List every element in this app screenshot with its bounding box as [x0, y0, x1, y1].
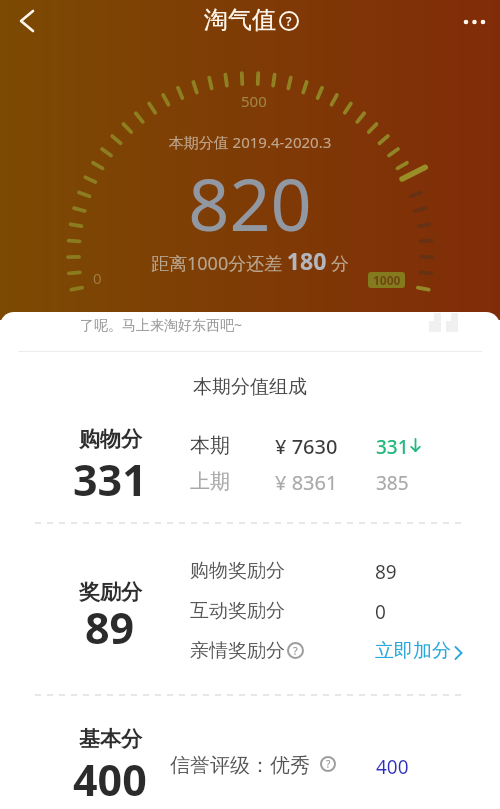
staticText: 距离1000分还差 180 分	[0, 245, 500, 276]
staticText: 了呢。马上来淘好东西吧~	[80, 315, 243, 334]
staticText: 331	[376, 434, 409, 460]
staticText: ¥ 8361	[275, 469, 338, 496]
staticText: 立即加分	[375, 639, 451, 663]
staticText: 本期分值 2019.4-2020.3	[0, 132, 500, 152]
button[interactable]: 了呢。马上来淘好东西吧~	[0, 312, 500, 351]
staticText: 淘气值	[204, 5, 276, 35]
staticText: 亲情奖励分	[190, 639, 285, 663]
button[interactable]: 立即加分	[375, 639, 466, 663]
button[interactable]: ?	[320, 756, 336, 772]
staticText: ?	[293, 644, 298, 658]
staticText: ¥ 7630	[275, 433, 338, 460]
button[interactable]: ?	[287, 642, 304, 659]
staticText: 400	[73, 750, 147, 809]
staticText: 500	[241, 91, 267, 111]
staticText: 0	[375, 599, 386, 625]
staticText: 820	[0, 154, 500, 252]
staticText: 上期	[190, 469, 230, 494]
staticText: 基本分	[79, 726, 142, 752]
staticText: 本期分值组成	[0, 375, 500, 399]
staticText: 信誉评级：优秀	[170, 753, 310, 778]
staticText: 1000	[373, 272, 401, 288]
staticText: ?	[326, 757, 331, 771]
staticText: 0	[93, 268, 102, 288]
staticText: 奖励分	[79, 579, 142, 605]
staticText: 购物奖励分	[190, 559, 285, 583]
staticText: 385	[376, 470, 409, 496]
staticText: 400	[376, 754, 409, 780]
staticText: 89	[85, 598, 135, 657]
staticText: 互动奖励分	[190, 599, 285, 623]
staticText: 331	[73, 450, 147, 509]
staticText: ?	[286, 13, 292, 29]
button[interactable]	[6, 0, 50, 44]
staticText: 本期	[190, 433, 230, 458]
staticText: 购物分	[79, 426, 142, 452]
staticText: 89	[375, 559, 397, 585]
button[interactable]: 淘气值	[204, 5, 296, 35]
button[interactable]	[448, 2, 492, 42]
